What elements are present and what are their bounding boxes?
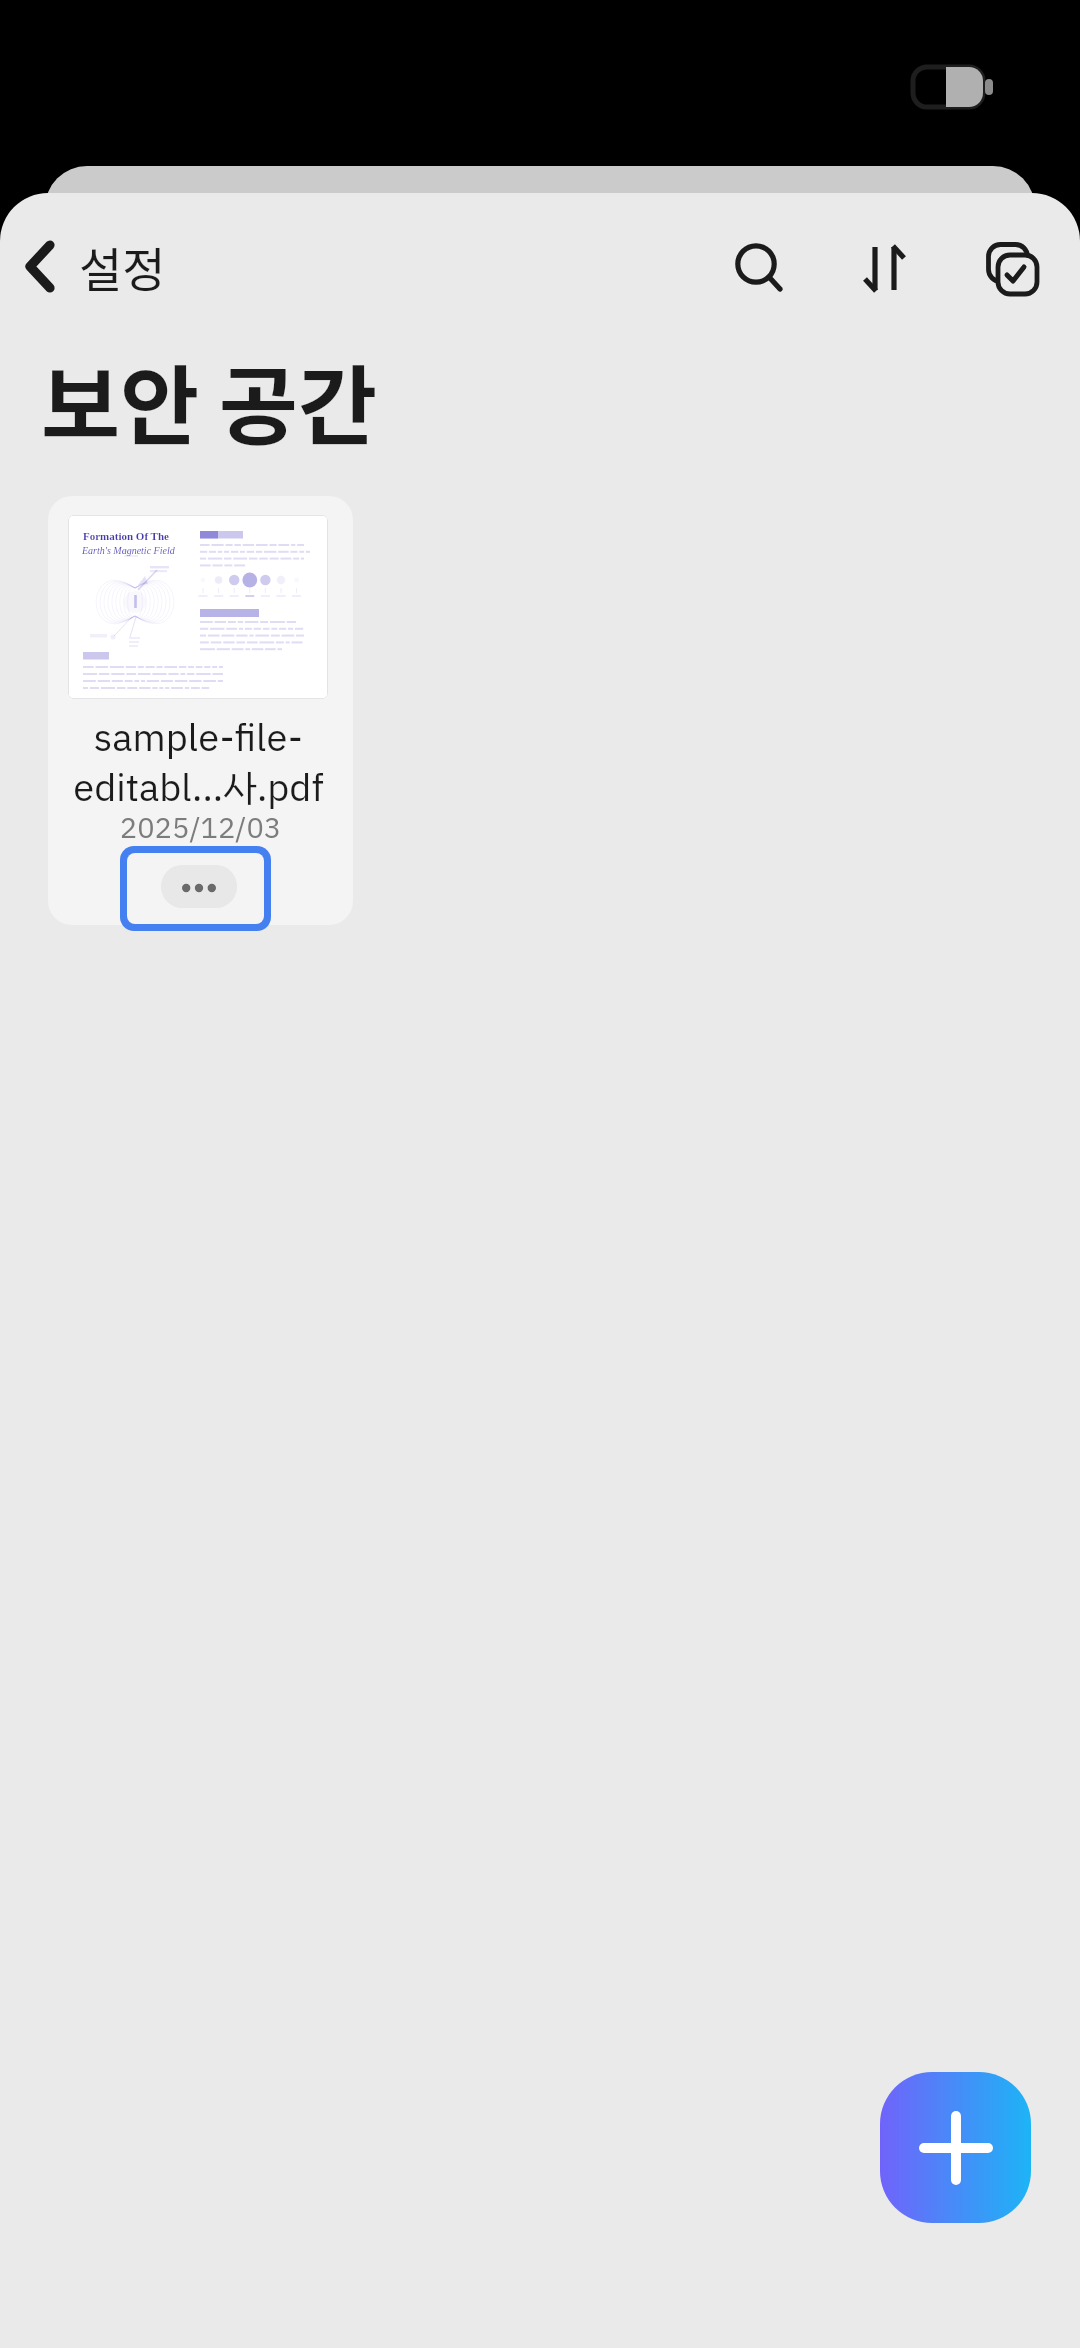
staticText: 보안 공간 bbox=[41, 338, 378, 463]
button[interactable]: Search bbox=[708, 193, 804, 339]
button[interactable]: Select all bbox=[963, 193, 1059, 339]
button[interactable]: More options bbox=[127, 853, 264, 924]
staticText: 2025/12/03 bbox=[48, 807, 353, 851]
staticText: sample-file-editabl...사.pdf bbox=[48, 710, 351, 817]
button[interactable]: 설정 bbox=[0, 193, 181, 339]
staticText: Formation Of The bbox=[83, 530, 169, 542]
staticText: 설정 bbox=[79, 232, 166, 300]
button[interactable]: Add bbox=[880, 2072, 1031, 2223]
staticText: Earth's Magnetic Field bbox=[82, 545, 175, 556]
button[interactable]: Formation Of The bbox=[48, 496, 353, 925]
button[interactable]: Sort bbox=[837, 193, 933, 339]
